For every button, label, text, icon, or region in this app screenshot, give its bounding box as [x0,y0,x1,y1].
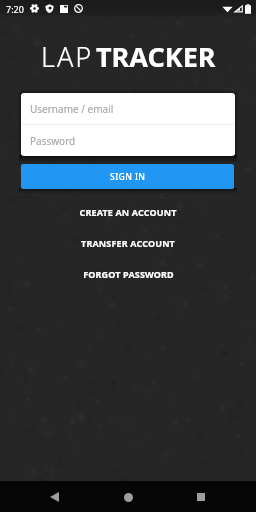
staticText: TRANSFER ACCOUNT [81,237,175,249]
staticText: Password [30,134,76,148]
staticText: SIGN IN [110,171,146,183]
button[interactable]: Back [40,483,68,511]
staticText: TRACKER [96,38,216,74]
button[interactable]: TRANSFER ACCOUNT [0,231,256,255]
staticText: LAP [41,38,94,74]
button[interactable]: Username / email [30,93,235,124]
staticText: Username / email [30,102,114,116]
button[interactable]: CREATE AN ACCOUNT [0,200,256,224]
button[interactable]: Home [114,483,142,511]
button[interactable]: Recent apps [187,483,215,511]
button[interactable]: SIGN IN [21,164,234,189]
staticText: 7:20 [6,3,24,15]
staticText: FORGOT PASSWORD [83,268,174,280]
button[interactable]: Password [30,125,235,156]
button[interactable]: FORGOT PASSWORD [0,262,256,286]
staticText: CREATE AN ACCOUNT [79,206,177,218]
